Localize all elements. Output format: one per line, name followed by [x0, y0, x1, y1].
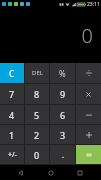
button[interactable]: DEL	[25, 63, 49, 83]
button[interactable]: 8	[25, 84, 49, 104]
button[interactable]: 3	[50, 125, 75, 144]
staticText: +/-	[8, 150, 17, 160]
other: Minus	[85, 111, 93, 119]
button[interactable]: C	[0, 63, 24, 83]
button[interactable]: Minus	[76, 105, 101, 124]
staticText: 2	[34, 129, 40, 141]
staticText: 3	[60, 129, 66, 141]
button[interactable]: Divide	[76, 63, 101, 83]
button[interactable]: 7	[0, 84, 24, 104]
staticText: 5	[34, 109, 40, 121]
other: Decimal point	[59, 151, 67, 159]
other: Plus	[85, 131, 93, 139]
button[interactable]: 6	[50, 105, 75, 124]
staticText: 1	[9, 129, 15, 141]
other: Divide	[85, 69, 93, 77]
staticText: 8	[34, 88, 40, 100]
staticText: DEL	[32, 69, 43, 77]
button[interactable]: Back	[12, 165, 30, 180]
button[interactable]: 9	[50, 84, 75, 104]
button[interactable]: Decimal point	[50, 145, 75, 164]
button[interactable]: Multiply	[76, 84, 101, 104]
button[interactable]: 2	[25, 125, 49, 144]
staticText: 6	[60, 109, 66, 121]
other: Multiply	[85, 91, 92, 98]
staticText: %	[59, 68, 66, 79]
button[interactable]: Home	[42, 165, 60, 180]
button[interactable]: +/-	[0, 145, 24, 164]
button[interactable]: Plus	[76, 125, 101, 144]
button[interactable]: Equals	[76, 145, 101, 164]
button[interactable]: 1	[0, 125, 24, 144]
button[interactable]: 4	[0, 105, 24, 124]
staticText: C	[9, 68, 15, 79]
staticText: 9	[60, 88, 66, 100]
staticText: 23:11	[87, 1, 100, 8]
staticText: 4	[9, 109, 15, 121]
staticText: 0	[81, 22, 93, 49]
button[interactable]: 0	[25, 145, 49, 164]
button[interactable]: Recent apps	[71, 165, 89, 180]
button[interactable]: %	[50, 63, 75, 83]
staticText: 0	[34, 149, 40, 161]
button[interactable]: 5	[25, 105, 49, 124]
other: Equals	[85, 151, 93, 159]
staticText: 7	[9, 88, 15, 100]
